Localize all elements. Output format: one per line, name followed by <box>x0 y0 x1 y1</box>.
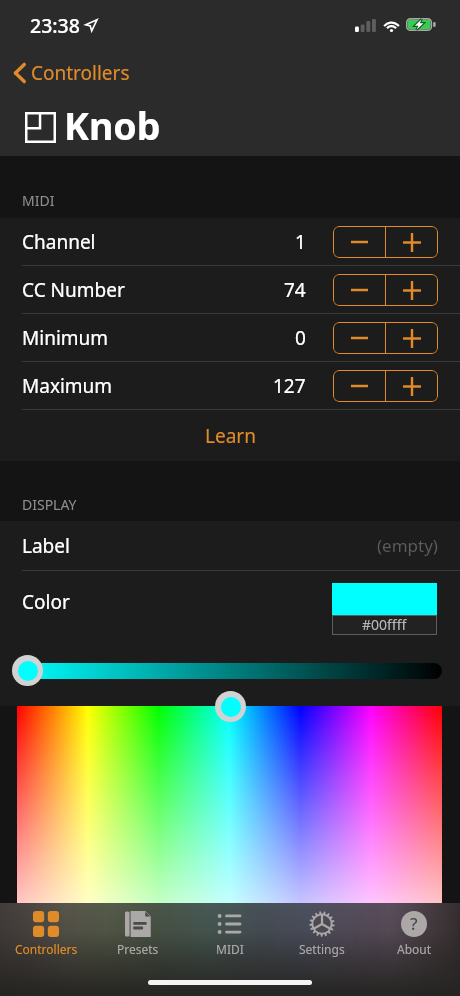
staticText: MIDI <box>216 941 244 957</box>
staticText: Controllers <box>15 941 78 957</box>
button[interactable]: ? <box>368 903 460 957</box>
staticText: MIDI <box>22 191 55 210</box>
staticText: Label <box>22 533 70 559</box>
button[interactable]: Decrease Minimum <box>333 322 385 354</box>
staticText: CC Number <box>22 277 125 303</box>
button[interactable]: Controllers <box>11 60 130 86</box>
staticText: 0 <box>295 325 306 351</box>
button[interactable]: Decrease Channel <box>333 226 385 258</box>
button[interactable]: Decrease Maximum <box>333 370 385 402</box>
button[interactable]: MIDI <box>184 903 276 957</box>
staticText: Controllers <box>31 60 130 86</box>
button[interactable]: Controllers <box>0 903 92 957</box>
staticText: Knob <box>64 100 161 151</box>
staticText: 127 <box>273 373 306 399</box>
staticText: About <box>397 941 432 957</box>
button[interactable]: Increase CC Number <box>386 274 438 306</box>
button[interactable]: Learn <box>0 410 460 461</box>
button[interactable]: Brightness <box>12 655 43 686</box>
staticText: Settings <box>299 941 345 957</box>
staticText: Maximum <box>22 373 113 399</box>
staticText: ? <box>410 912 418 935</box>
button[interactable]: Increase Channel <box>386 226 438 258</box>
button[interactable]: Label <box>0 521 460 570</box>
staticText: (empty) <box>377 534 438 557</box>
staticText: Color <box>22 589 70 615</box>
button[interactable]: Decrease CC Number <box>333 274 385 306</box>
staticText: 1 <box>295 229 306 255</box>
button[interactable]: Increase Minimum <box>386 322 438 354</box>
button[interactable]: Colour picker <box>215 691 246 722</box>
staticText: Minimum <box>22 325 109 351</box>
staticText: DISPLAY <box>22 495 77 514</box>
staticText: Channel <box>22 229 96 255</box>
staticText: #00ffff <box>362 615 407 634</box>
button[interactable]: Settings <box>276 903 368 957</box>
button[interactable]: Colour swatch <box>332 583 437 635</box>
staticText: Learn <box>205 423 256 449</box>
button[interactable]: Increase Maximum <box>386 370 438 402</box>
button[interactable]: Presets <box>92 903 184 957</box>
staticText: 23:38 <box>30 12 80 39</box>
staticText: Presets <box>117 941 159 957</box>
staticText: 74 <box>284 277 306 303</box>
